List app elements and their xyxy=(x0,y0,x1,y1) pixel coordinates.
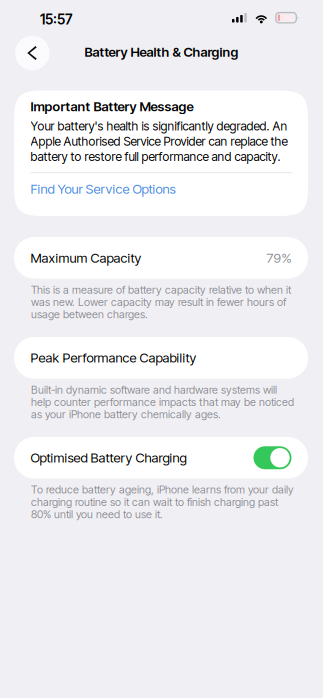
staticText: Find Your Service Options xyxy=(30,181,175,197)
button[interactable]: Find Your Service Options xyxy=(30,173,175,216)
staticText: Optimised Battery Charging xyxy=(30,450,186,466)
staticText: Maximum Capacity xyxy=(30,250,141,266)
button[interactable]: Optimised Battery Charging xyxy=(253,446,291,469)
staticText: 79% xyxy=(266,250,291,266)
staticText: Important Battery Message xyxy=(30,98,193,114)
staticText: Built-in dynamic software and hardware s… xyxy=(31,384,294,420)
button[interactable]: Back xyxy=(13,34,51,72)
button[interactable]: Peak Performance Capability xyxy=(14,337,308,379)
staticText: Peak Performance Capability xyxy=(30,350,196,366)
staticText: This is a measure of battery capacity re… xyxy=(31,284,291,320)
staticText: 15:57 xyxy=(40,11,72,28)
staticText: Battery Health & Charging xyxy=(84,44,238,60)
staticText: Your battery's health is significantly d… xyxy=(30,118,287,164)
staticText: To reduce battery ageing, iPhone learns … xyxy=(31,484,294,520)
